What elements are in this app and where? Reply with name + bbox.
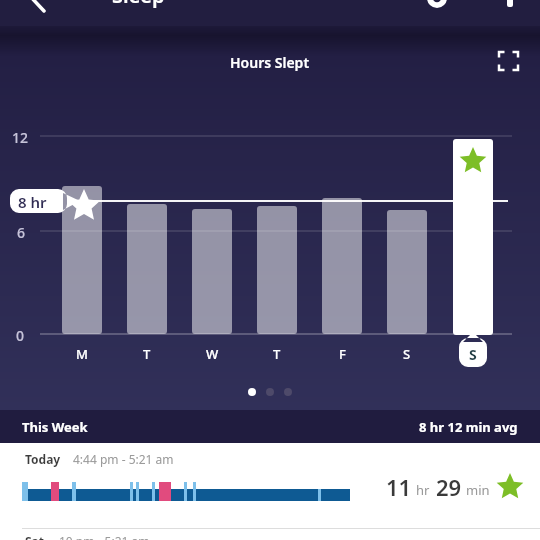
staticText: S (469, 345, 477, 364)
button[interactable]: Sleep (112, 0, 165, 8)
staticText: W (206, 345, 219, 361)
staticText: 11 (386, 472, 412, 502)
staticText: T (273, 345, 281, 361)
staticText: 8 hr (18, 192, 47, 212)
button[interactable] (18, 0, 54, 24)
staticText: T (143, 345, 151, 361)
staticText: 8 hr 12 min avg (419, 418, 518, 436)
button[interactable] (499, 52, 518, 70)
staticText: 0 (16, 326, 25, 345)
staticText: 4:44 pm - 5:21 am (73, 451, 174, 467)
staticText: S (403, 345, 411, 361)
button[interactable] (496, 0, 526, 24)
button[interactable]: Sat (0, 529, 540, 540)
staticText: Today (25, 451, 61, 467)
staticText: M (76, 345, 88, 361)
staticText: 12 (12, 128, 29, 147)
button[interactable] (420, 0, 454, 24)
staticText: This Week (22, 418, 88, 436)
staticText: F (339, 345, 346, 361)
button[interactable]: Today (0, 443, 540, 528)
staticText: hr (416, 481, 430, 499)
staticText: min (466, 481, 490, 499)
staticText: 10 pm - 5:21 am (59, 533, 150, 540)
staticText: 29 (436, 472, 462, 502)
staticText: Sat (25, 533, 45, 540)
staticText: Hours Slept (230, 53, 310, 72)
staticText: 6 (17, 223, 26, 242)
